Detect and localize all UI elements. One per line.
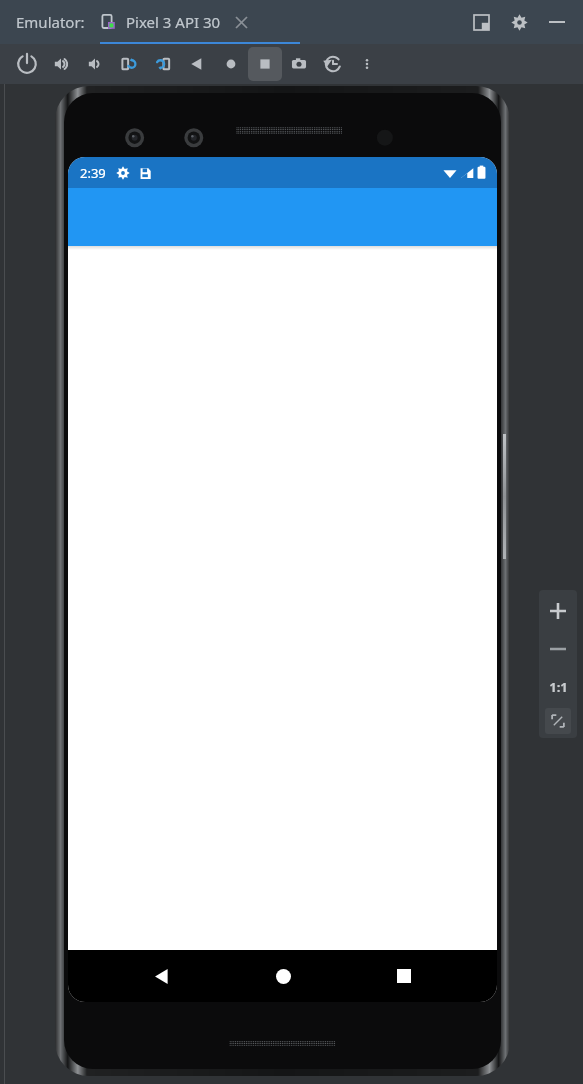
button[interactable]: Minimize — [543, 8, 571, 36]
button[interactable]: Back — [133, 950, 189, 1002]
button[interactable]: Settings — [505, 8, 533, 36]
button[interactable]: Recent apps — [376, 950, 432, 1002]
button[interactable]: Zoom in — [541, 594, 575, 628]
staticText: Emulator: — [16, 12, 85, 32]
button[interactable]: Fit to screen — [545, 708, 571, 734]
button[interactable]: Volume down — [78, 47, 112, 81]
staticText: 2:39 — [80, 164, 106, 182]
button[interactable]: 1:1 — [541, 670, 575, 704]
button[interactable]: Rotate right — [146, 47, 180, 81]
button[interactable]: Dock window — [467, 8, 495, 36]
button[interactable]: More — [350, 47, 384, 81]
button[interactable]: Rotate left — [112, 47, 146, 81]
button[interactable]: Power — [10, 47, 44, 81]
button[interactable]: Screenshot — [282, 47, 316, 81]
button[interactable]: Volume up — [44, 47, 78, 81]
button[interactable]: Pixel 3 API 30 — [100, 0, 251, 44]
button[interactable]: History — [316, 47, 350, 81]
button[interactable]: Close tab — [231, 12, 251, 32]
staticText: Pixel 3 API 30 — [126, 12, 221, 32]
button[interactable]: Zoom out — [541, 632, 575, 666]
button[interactable]: Overview — [248, 47, 282, 81]
button[interactable]: Home — [255, 950, 311, 1002]
staticText: 1:1 — [549, 678, 568, 696]
button[interactable]: Back — [180, 47, 214, 81]
button[interactable]: Home — [214, 47, 248, 81]
